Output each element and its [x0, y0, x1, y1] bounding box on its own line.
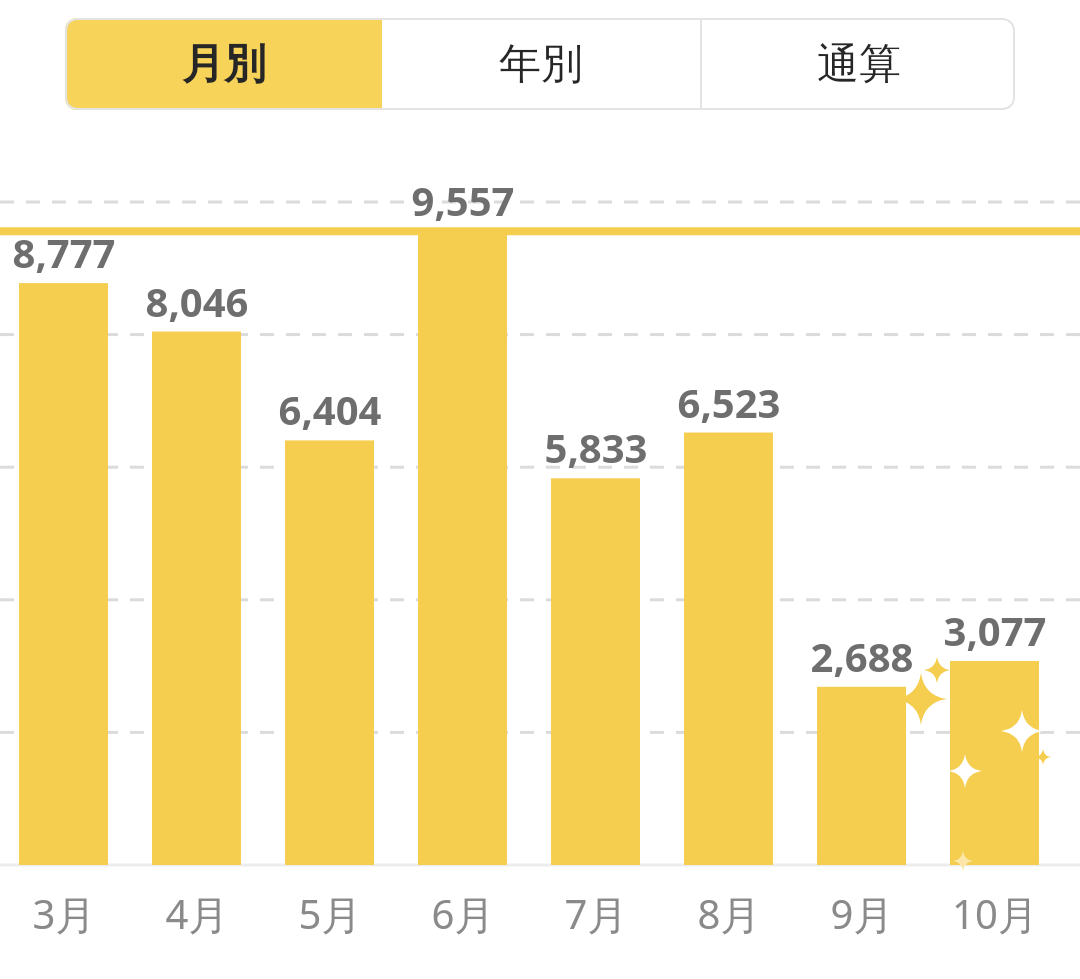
staticText: 5,833: [496, 420, 696, 474]
button[interactable]: 年別: [382, 18, 700, 110]
staticText: 10月: [905, 886, 1080, 941]
staticText: 8,777: [0, 225, 164, 279]
staticText: 3月: [0, 886, 154, 941]
staticText: 2,688: [762, 629, 962, 683]
staticText: 7月: [506, 886, 686, 941]
staticText: 8月: [639, 886, 819, 941]
staticText: 9,557: [363, 173, 563, 227]
staticText: 通算: [817, 38, 901, 91]
staticText: 9月: [772, 886, 952, 941]
staticText: 3,077: [895, 603, 1080, 657]
staticText: 5月: [240, 886, 420, 941]
staticText: 6,404: [230, 382, 430, 436]
staticText: 6,523: [629, 375, 829, 429]
button[interactable]: 月別: [65, 18, 382, 110]
staticText: 8,046: [97, 274, 297, 328]
staticText: 月別: [182, 38, 266, 91]
staticText: 6月: [373, 886, 553, 941]
staticText: 4月: [107, 886, 287, 941]
staticText: 年別: [499, 38, 583, 91]
button[interactable]: 通算: [702, 18, 1015, 110]
